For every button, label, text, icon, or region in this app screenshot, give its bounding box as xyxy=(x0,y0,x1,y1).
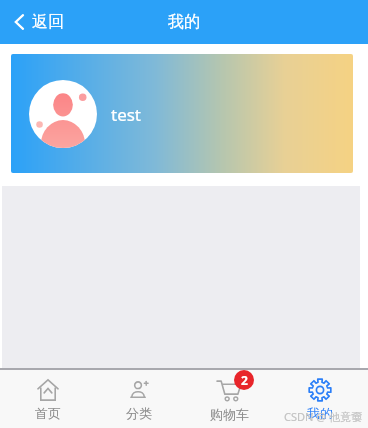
other: Shopping cart xyxy=(216,377,242,403)
staticText: 首页 xyxy=(35,405,61,421)
staticText: CSDN @ 他竟嫑 xyxy=(284,409,362,424)
other: Avatar xyxy=(29,80,97,148)
button[interactable]: Shopping cart xyxy=(187,370,271,428)
staticText: test xyxy=(111,103,142,126)
button[interactable]: Home xyxy=(6,370,90,428)
staticText: 返回 xyxy=(32,12,64,32)
button[interactable]: 返回 xyxy=(10,8,68,36)
staticText: 2 xyxy=(241,372,248,388)
other: Mine xyxy=(308,378,332,402)
staticText: 我的 xyxy=(307,405,333,421)
staticText: 购物车 xyxy=(210,406,249,422)
other: Home xyxy=(36,378,60,402)
button[interactable]: Avatar xyxy=(11,54,353,173)
button[interactable]: Category xyxy=(97,370,181,428)
staticText: 我的 xyxy=(168,12,200,32)
button[interactable]: Mine xyxy=(278,370,362,428)
other: Category xyxy=(127,378,151,402)
staticText: 分类 xyxy=(126,405,152,421)
